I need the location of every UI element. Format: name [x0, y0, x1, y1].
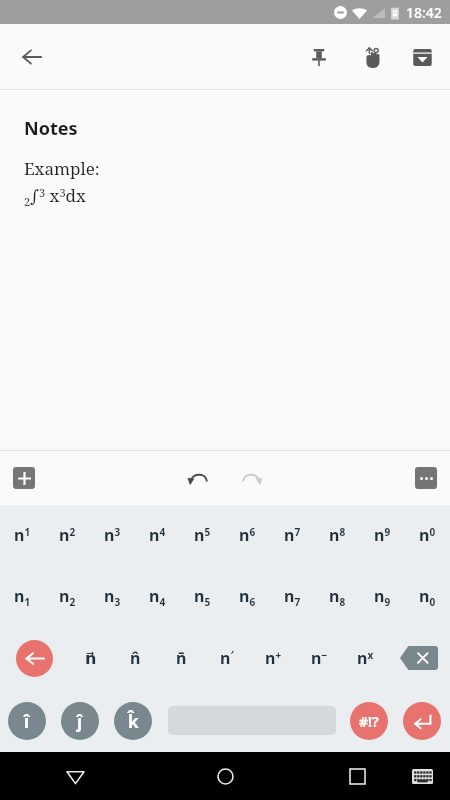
button[interactable]: n⃗ — [68, 627, 113, 689]
staticText: n8 — [329, 524, 346, 546]
button[interactable]: n2 — [45, 565, 90, 627]
staticText: n5 — [194, 585, 211, 608]
staticText: n̄ — [176, 647, 187, 669]
button[interactable]: n0 — [405, 565, 450, 627]
button[interactable]: Add — [13, 467, 35, 489]
button[interactable]: n3 — [90, 565, 135, 627]
button[interactable]: ĵ — [61, 702, 99, 740]
button[interactable]: More options — [415, 467, 437, 489]
button[interactable]: Back — [14, 39, 50, 75]
button[interactable]: Shift left — [0, 627, 68, 689]
staticText: n9 — [374, 585, 391, 608]
staticText: n1 — [14, 585, 31, 608]
button[interactable]: n7 — [270, 565, 315, 627]
staticText: n4 — [149, 524, 166, 546]
staticText: n9 — [374, 524, 391, 546]
staticText: n7 — [284, 524, 301, 546]
button[interactable]: î — [8, 702, 46, 740]
staticText: n4 — [149, 585, 166, 608]
button[interactable]: nx — [342, 627, 388, 689]
staticText: n6 — [239, 524, 256, 546]
staticText: n3 — [104, 585, 121, 608]
button[interactable]: n4 — [135, 565, 180, 627]
staticText: n8 — [329, 585, 346, 608]
staticText: n2 — [59, 524, 76, 546]
button[interactable]: n1 — [0, 505, 45, 565]
staticText: n5 — [194, 524, 211, 546]
staticText: n̂ — [130, 647, 141, 669]
button[interactable]: Enter — [403, 702, 441, 740]
button[interactable]: k̂ — [114, 702, 152, 740]
staticText: ĵ — [77, 710, 83, 733]
button[interactable]: n− — [296, 627, 342, 689]
button[interactable]: n6 — [225, 505, 270, 565]
button[interactable]: n1 — [0, 565, 45, 627]
staticText: k̂ — [128, 710, 139, 733]
staticText: n− — [311, 647, 328, 669]
button[interactable]: n7 — [270, 505, 315, 565]
staticText: n⃗ — [85, 649, 97, 668]
button[interactable]: n̄ — [158, 627, 204, 689]
staticText: Notes — [24, 116, 78, 141]
button[interactable]: n̂ — [113, 627, 158, 689]
button[interactable]: Home — [170, 752, 280, 800]
button[interactable]: Redo — [231, 457, 273, 499]
staticText: Example: — [24, 157, 100, 180]
staticText: n1 — [14, 524, 31, 546]
button[interactable]: n8 — [315, 505, 360, 565]
staticText: n2 — [59, 585, 76, 608]
button[interactable]: Switch keyboard — [394, 752, 450, 800]
button[interactable]: Backspace — [388, 627, 450, 689]
staticText: n3 — [104, 524, 121, 546]
button[interactable]: Undo — [177, 457, 219, 499]
button[interactable]: n+ — [250, 627, 296, 689]
button[interactable]: #!? — [350, 702, 388, 740]
staticText: n6 — [239, 585, 256, 608]
button[interactable]: Pin — [299, 37, 339, 77]
button[interactable]: Select — [351, 37, 391, 77]
button[interactable]: n8 — [315, 565, 360, 627]
button[interactable]: n2 — [45, 505, 90, 565]
button[interactable]: n9 — [360, 565, 405, 627]
button[interactable]: n9 — [360, 505, 405, 565]
button[interactable]: n′ — [204, 627, 250, 689]
button[interactable]: n6 — [225, 565, 270, 627]
button[interactable]: Archive — [402, 37, 442, 77]
button[interactable]: n5 — [180, 565, 225, 627]
staticText: n0 — [419, 524, 436, 546]
button[interactable]: n5 — [180, 505, 225, 565]
staticText: n′ — [220, 647, 234, 669]
staticText: n+ — [265, 647, 282, 669]
button[interactable]: Back — [0, 752, 150, 800]
staticText: #!? — [359, 712, 379, 731]
button[interactable]: n0 — [405, 505, 450, 565]
staticText: nx — [357, 647, 374, 669]
staticText: 2∫3 x3dx — [24, 184, 86, 209]
button[interactable]: n3 — [90, 505, 135, 565]
staticText: n7 — [284, 585, 301, 608]
staticText: 18:42 — [406, 3, 442, 22]
button[interactable]: Recents — [320, 752, 394, 800]
button[interactable]: n4 — [135, 505, 180, 565]
staticText: î — [24, 710, 30, 733]
staticText: n0 — [419, 585, 436, 608]
